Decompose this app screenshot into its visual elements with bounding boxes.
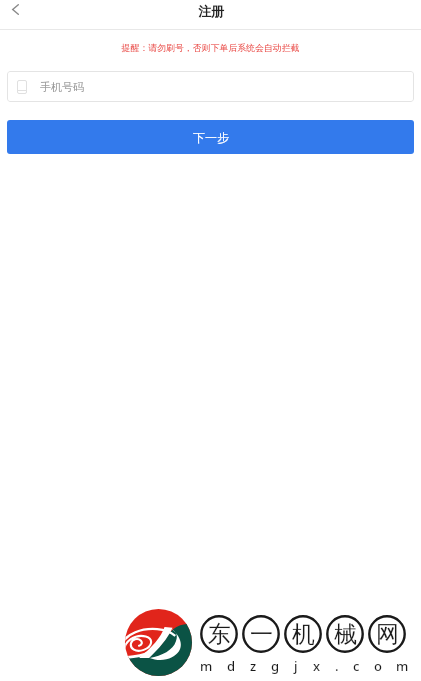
button[interactable]: 下一步: [7, 120, 414, 154]
staticText: .: [335, 657, 339, 675]
staticText: 注册: [198, 3, 224, 19]
button[interactable]: Back: [3, 0, 27, 21]
staticText: 提醒：请勿刷号，否则下单后系统会自动拦截: [0, 42, 421, 53]
button[interactable]: 东一机械网 logo: [125, 609, 192, 676]
staticText: 手机号码: [40, 80, 84, 94]
staticText: z: [250, 657, 257, 675]
staticText: 东: [208, 620, 231, 649]
staticText: 下一步: [193, 130, 229, 145]
staticText: g: [271, 657, 280, 675]
button[interactable]: 手机号码: [7, 71, 414, 102]
staticText: 网: [376, 620, 399, 649]
staticText: c: [353, 657, 360, 675]
staticText: x: [313, 657, 321, 675]
staticText: 机: [292, 620, 315, 649]
staticText: o: [374, 657, 382, 675]
staticText: 一: [250, 620, 273, 649]
staticText: d: [227, 657, 236, 675]
staticText: m: [200, 657, 213, 675]
staticText: m: [396, 657, 409, 675]
staticText: j: [294, 657, 298, 675]
staticText: 械: [334, 620, 357, 649]
